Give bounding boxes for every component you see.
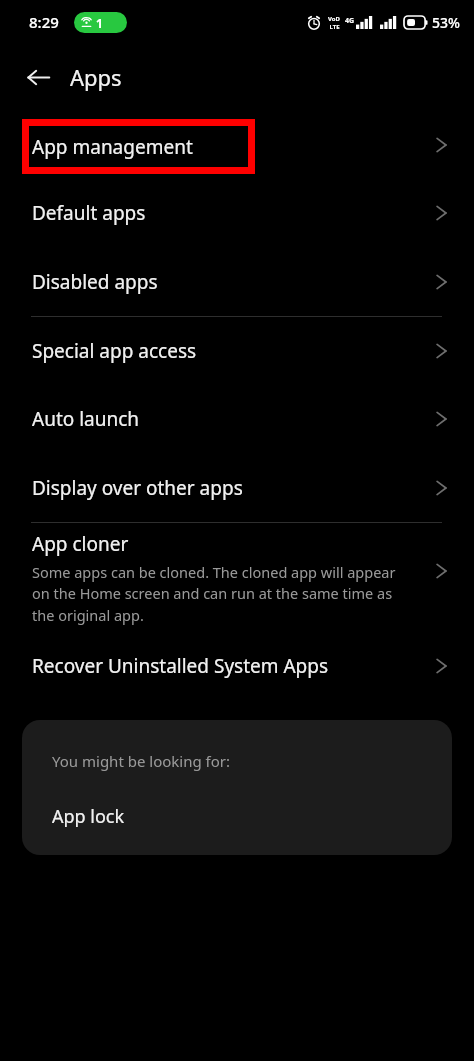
- staticText: Auto launch: [32, 406, 140, 432]
- staticText: App cloner: [32, 531, 129, 557]
- staticText: Display over other apps: [32, 475, 243, 501]
- staticText: Recover Uninstalled System Apps: [32, 653, 329, 679]
- staticText: LTE: [329, 23, 340, 31]
- button[interactable]: Display over other apps: [0, 453, 474, 522]
- staticText: You might be looking for:: [52, 751, 231, 771]
- staticText: App management: [32, 134, 193, 160]
- button[interactable]: App management: [0, 106, 474, 178]
- staticText: 4G: [345, 16, 355, 26]
- staticText: 53%: [432, 13, 460, 32]
- staticText: App lock: [52, 804, 125, 829]
- staticText: Default apps: [32, 200, 146, 226]
- staticText: Special app access: [32, 338, 197, 364]
- staticText: Apps: [70, 62, 122, 92]
- staticText: Disabled apps: [32, 269, 158, 295]
- button[interactable]: Special app access: [0, 317, 474, 385]
- button[interactable]: Recover Uninstalled System Apps: [0, 634, 474, 698]
- staticText: Some apps can be cloned. The cloned app …: [32, 562, 412, 626]
- staticText: 8:29: [29, 12, 59, 32]
- staticText: VoD: [328, 15, 340, 23]
- button[interactable]: App lock: [22, 790, 452, 842]
- button[interactable]: Back: [16, 55, 60, 99]
- button[interactable]: Default apps: [0, 178, 474, 247]
- button[interactable]: App cloner: [0, 523, 474, 634]
- button[interactable]: Disabled apps: [0, 247, 474, 316]
- button[interactable]: Auto launch: [0, 385, 474, 453]
- staticText: 1: [96, 15, 103, 31]
